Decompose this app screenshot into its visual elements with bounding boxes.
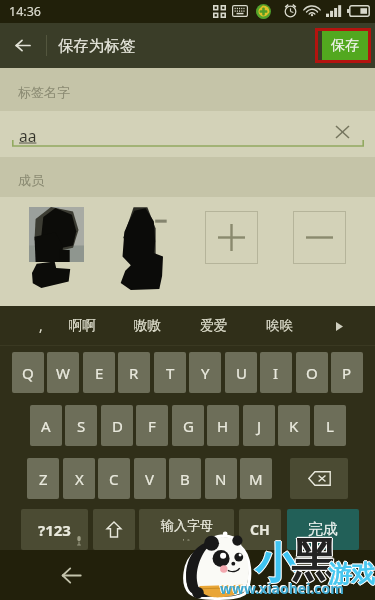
staticText: 黑 <box>290 532 336 590</box>
staticText: 黑 <box>291 532 337 590</box>
button[interactable]: O <box>296 352 328 393</box>
staticText: www.xiaohei.com <box>219 578 343 597</box>
staticText: 唉唉 <box>266 317 293 334</box>
button[interactable]: CH <box>239 509 281 550</box>
staticText: aa <box>19 125 37 146</box>
button[interactable]: ?123 <box>21 509 88 550</box>
staticText: 爱爱 <box>200 317 227 334</box>
staticText: 小 <box>254 538 296 591</box>
staticText: V <box>145 469 155 489</box>
button[interactable]: J <box>243 405 275 446</box>
staticText: P <box>342 363 352 383</box>
staticText: 游 <box>328 558 352 588</box>
button[interactable]: A <box>30 405 62 446</box>
staticText: 黑 <box>291 533 337 591</box>
staticText: 戏 <box>351 560 375 590</box>
staticText: www.xiaohei.com <box>220 579 344 598</box>
staticText: M <box>249 469 263 489</box>
button[interactable]: D <box>101 405 133 446</box>
button[interactable]: Remove member <box>293 211 346 264</box>
staticText: 黑 <box>292 532 338 590</box>
button[interactable]: E <box>83 352 115 393</box>
staticText: 小 <box>255 539 297 592</box>
button[interactable]: Q <box>12 352 44 393</box>
staticText: 保存为标签 <box>58 36 136 56</box>
button[interactable]: 完成 <box>287 509 359 550</box>
button[interactable]: T <box>154 352 186 393</box>
staticText: 小 <box>256 538 298 591</box>
button[interactable]: L <box>314 405 346 446</box>
button[interactable]: F <box>136 405 168 446</box>
button[interactable]: V <box>134 458 166 499</box>
staticText: O <box>306 363 318 383</box>
button[interactable]: B <box>169 458 201 499</box>
button[interactable]: Y <box>189 352 221 393</box>
staticText: , <box>39 317 43 335</box>
button[interactable]: H <box>207 405 239 446</box>
staticText: H <box>217 416 229 436</box>
staticText: T <box>166 363 175 383</box>
staticText: Q <box>22 363 34 383</box>
button[interactable]: 输入字母 <box>139 509 234 550</box>
button[interactable]: R <box>118 352 150 393</box>
staticText: R <box>129 363 139 383</box>
staticText: 戏 <box>352 559 375 589</box>
button[interactable]: C <box>98 458 130 499</box>
staticText: F <box>148 416 156 436</box>
staticText: 黑 <box>291 531 337 589</box>
button[interactable]: Add member <box>205 211 258 264</box>
staticText: B <box>180 469 190 489</box>
staticText: C <box>109 469 119 489</box>
button[interactable]: I <box>260 352 292 393</box>
staticText: 标签名字 <box>18 84 70 100</box>
button[interactable]: P <box>331 352 363 393</box>
staticText: 游 <box>327 559 351 589</box>
button[interactable]: 嗷嗷 <box>130 310 164 341</box>
button[interactable]: Member 1 <box>29 207 84 262</box>
button[interactable]: U <box>225 352 257 393</box>
staticText: 14:36 <box>9 3 41 20</box>
button[interactable]: 爱爱 <box>196 310 230 341</box>
button[interactable]: 啊啊 <box>65 310 99 341</box>
button[interactable]: Z <box>27 458 59 499</box>
button[interactable]: S <box>65 405 97 446</box>
staticText: S <box>77 416 86 436</box>
button[interactable]: Backspace <box>290 458 348 499</box>
button[interactable]: aa <box>0 111 375 157</box>
button[interactable]: Back <box>0 23 46 68</box>
staticText: E <box>95 363 104 383</box>
staticText: N <box>215 469 227 489</box>
button[interactable]: More candidates <box>330 317 348 335</box>
button[interactable]: Clear text <box>329 119 355 145</box>
staticText: L <box>326 416 334 436</box>
button[interactable]: 保存 <box>322 31 368 60</box>
staticText: 嗷嗷 <box>134 317 161 334</box>
button[interactable]: W <box>47 352 79 393</box>
button[interactable]: X <box>63 458 95 499</box>
staticText: 输入字母 <box>161 517 213 533</box>
button[interactable]: N <box>205 458 237 499</box>
staticText: CH <box>250 520 270 539</box>
staticText: Z <box>39 469 48 489</box>
staticText: 完成 <box>308 520 338 539</box>
button[interactable]: , <box>23 310 59 341</box>
button[interactable]: K <box>278 405 310 446</box>
button[interactable]: Back <box>54 558 88 592</box>
staticText: 戏 <box>351 559 375 589</box>
staticText: 戏 <box>350 559 374 589</box>
staticText: K <box>289 416 299 436</box>
button[interactable]: M <box>240 458 272 499</box>
staticText: 游 <box>329 559 353 589</box>
staticText: D <box>112 416 123 436</box>
button[interactable]: Member 2 <box>117 202 163 290</box>
staticText: Y <box>201 363 210 383</box>
button[interactable]: Shift <box>93 509 135 550</box>
staticText: U <box>236 363 247 383</box>
staticText: 小 <box>255 538 297 591</box>
staticText: ?123 <box>38 520 71 540</box>
staticText: X <box>75 469 84 489</box>
button[interactable]: G <box>172 405 204 446</box>
staticText: W <box>56 363 70 383</box>
staticText: I <box>273 363 279 383</box>
button[interactable]: 唉唉 <box>262 310 296 341</box>
